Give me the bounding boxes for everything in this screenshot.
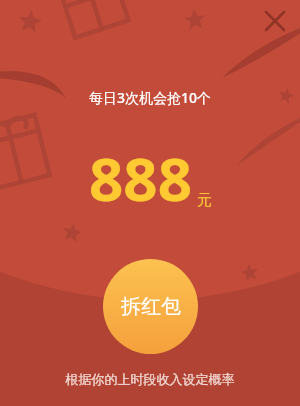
button[interactable]: 拆红包 bbox=[103, 259, 198, 354]
staticText: 888 bbox=[89, 137, 192, 219]
staticText: 拆红包 bbox=[121, 294, 181, 319]
button[interactable]: 关闭 bbox=[258, 4, 292, 38]
staticText: 每日3次机会抢10个 bbox=[0, 88, 300, 406]
staticText: 根据你的上时段收入设定概率 bbox=[0, 371, 300, 406]
staticText: 元 bbox=[197, 191, 212, 210]
